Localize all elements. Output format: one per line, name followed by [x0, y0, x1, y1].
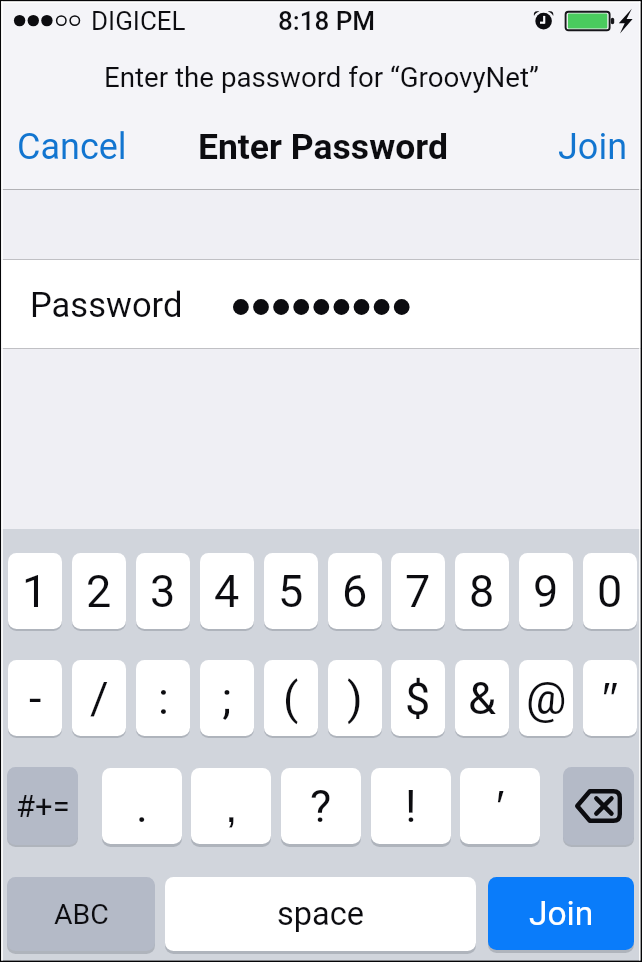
staticText: : [158, 672, 169, 725]
staticText: ) [347, 672, 363, 725]
staticText: Password [30, 285, 183, 325]
button[interactable]: . [102, 768, 182, 844]
button[interactable]: : [136, 660, 190, 736]
button[interactable]: Password [0, 260, 642, 348]
button[interactable]: ; [200, 660, 254, 736]
button[interactable]: ″ [583, 660, 637, 736]
button[interactable]: ? [281, 768, 361, 844]
button[interactable]: 2 [72, 553, 126, 629]
button[interactable]: ! [371, 768, 451, 844]
staticText: @ [526, 672, 567, 725]
staticText: ( [283, 672, 299, 725]
staticText: 5 [278, 565, 304, 618]
staticText: - [29, 672, 42, 725]
staticText: ′ [496, 781, 505, 831]
staticText: 4 [214, 565, 240, 618]
staticText: , [225, 781, 238, 831]
staticText: 3 [150, 565, 176, 618]
button[interactable]: ( [264, 660, 318, 736]
button[interactable]: 3 [136, 553, 190, 629]
button[interactable]: 6 [328, 553, 382, 629]
staticText: #+= [16, 788, 70, 824]
button[interactable]: 5 [264, 553, 318, 629]
button[interactable]: $ [391, 660, 445, 736]
staticText: ″ [602, 673, 618, 723]
staticText: Join [558, 126, 628, 168]
button[interactable]: ) [328, 660, 382, 736]
button[interactable]: & [455, 660, 509, 736]
button[interactable]: 8 [455, 553, 509, 629]
button[interactable]: , [191, 768, 271, 844]
button[interactable]: 0 [583, 553, 637, 629]
staticText: space [277, 895, 364, 933]
button[interactable]: #+= [7, 767, 78, 845]
staticText: 0 [597, 565, 623, 618]
staticText: / [90, 672, 109, 725]
staticText: Enter the password for “GroovyNet” [104, 61, 539, 93]
staticText: ABC [54, 898, 109, 931]
staticText: DIGICEL [91, 6, 186, 36]
staticText: . [136, 780, 148, 833]
staticText: 7 [405, 565, 431, 618]
staticText: 9 [533, 565, 559, 618]
button[interactable]: Join [539, 112, 642, 182]
button[interactable]: 4 [200, 553, 254, 629]
staticText: 8 [469, 565, 495, 618]
button[interactable]: Cancel [0, 112, 146, 182]
button[interactable]: 9 [519, 553, 573, 629]
staticText: 1 [22, 565, 48, 618]
staticText: 6 [342, 565, 368, 618]
staticText: ? [310, 780, 332, 833]
staticText: ! [405, 780, 417, 833]
staticText: 2 [86, 565, 112, 618]
button[interactable]: Join [488, 877, 634, 950]
button[interactable]: / [72, 660, 126, 736]
button[interactable]: ABC [7, 877, 155, 951]
button[interactable]: @ [519, 660, 573, 736]
staticText: 8:18 PM [278, 6, 376, 36]
staticText: & [468, 672, 496, 725]
button[interactable]: - [8, 660, 62, 736]
button[interactable]: 1 [8, 553, 62, 629]
button[interactable]: Delete [563, 767, 634, 845]
staticText: Cancel [17, 126, 127, 168]
staticText: $ [405, 672, 431, 725]
staticText: Enter Password [198, 126, 448, 168]
button[interactable]: space [165, 877, 476, 951]
button[interactable]: ′ [460, 768, 540, 844]
button[interactable]: 7 [391, 553, 445, 629]
staticText: ; [222, 672, 232, 725]
staticText: Join [529, 894, 594, 933]
